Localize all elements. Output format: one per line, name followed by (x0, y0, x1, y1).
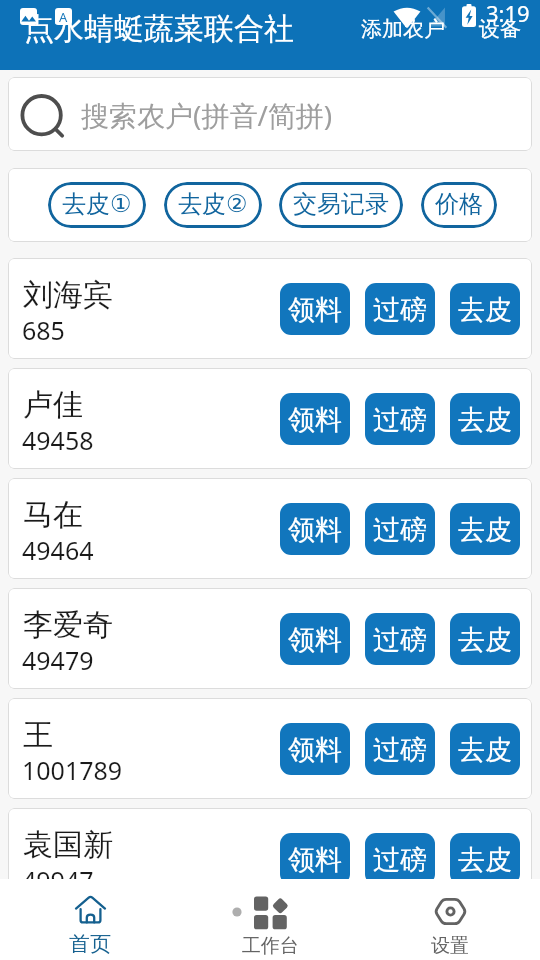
button[interactable]: 去皮 (450, 393, 520, 445)
staticText: 去皮 (458, 623, 512, 657)
staticText: 去皮 (458, 733, 512, 767)
staticText: 领料 (288, 293, 342, 327)
button[interactable]: 卢佳 (8, 368, 532, 469)
button[interactable]: 过磅 (365, 833, 435, 885)
staticText: 49464 (22, 533, 94, 567)
button[interactable]: 去皮② (164, 182, 262, 228)
staticText: 过磅 (373, 293, 427, 327)
staticText: 去皮 (458, 513, 512, 547)
staticText: 3:19 (486, 0, 530, 28)
staticText: 马在 (23, 496, 83, 534)
staticText: 搜索农户(拼音/简拼) (81, 96, 333, 134)
staticText: 添加农户 (361, 16, 445, 42)
staticText: 过磅 (373, 513, 427, 547)
button[interactable]: 领料 (280, 503, 350, 555)
button[interactable]: 李爱奇 (8, 588, 532, 689)
staticText: 去皮① (62, 189, 132, 219)
staticText: 领料 (288, 403, 342, 437)
button[interactable]: 领料 (280, 283, 350, 335)
staticText: 过磅 (373, 623, 427, 657)
button[interactable]: 去皮① (48, 182, 146, 228)
staticText: 过磅 (373, 843, 427, 877)
button[interactable]: 过磅 (365, 723, 435, 775)
button[interactable]: 领料 (280, 613, 350, 665)
staticText: 去皮② (178, 189, 248, 219)
button[interactable]: 过磅 (365, 283, 435, 335)
button[interactable]: 添加农户 (353, 6, 453, 52)
button[interactable]: 搜索农户(拼音/简拼) (8, 77, 532, 151)
button[interactable]: 交易记录 (279, 182, 403, 228)
button[interactable]: 马在 (8, 478, 532, 579)
button[interactable]: 去皮 (450, 833, 520, 885)
staticText: 49947 (22, 863, 94, 897)
button[interactable]: 工作台 (180, 879, 360, 960)
button[interactable]: 过磅 (365, 613, 435, 665)
staticText: 王 (23, 716, 53, 754)
staticText: 设置 (431, 934, 469, 958)
button[interactable]: 王 (8, 698, 532, 799)
staticText: 过磅 (373, 733, 427, 767)
staticText: 设备 (479, 16, 521, 42)
button[interactable]: 过磅 (365, 393, 435, 445)
staticText: 李爱奇 (23, 606, 113, 644)
staticText: 交易记录 (293, 189, 389, 219)
staticText: 49479 (22, 643, 94, 677)
button[interactable]: 去皮 (450, 503, 520, 555)
staticText: 去皮 (458, 293, 512, 327)
staticText: 卢佳 (23, 386, 83, 424)
staticText: 去皮 (458, 843, 512, 877)
staticText: 首页 (69, 931, 111, 957)
button[interactable]: 去皮 (450, 613, 520, 665)
button[interactable]: 过磅 (365, 503, 435, 555)
button[interactable]: 去皮 (450, 283, 520, 335)
staticText: 点水蜻蜓蔬菜联合社 (24, 10, 294, 48)
staticText: 工作台 (242, 934, 299, 958)
staticText: 49458 (22, 423, 94, 457)
staticText: 过磅 (373, 403, 427, 437)
button[interactable]: 设置 (360, 879, 540, 960)
button[interactable]: 袁国新 (8, 808, 532, 909)
button[interactable]: 去皮 (450, 723, 520, 775)
staticText: 领料 (288, 513, 342, 547)
staticText: 685 (22, 313, 65, 347)
staticText: 袁国新 (23, 826, 113, 864)
staticText: 领料 (288, 843, 342, 877)
staticText: A (59, 8, 68, 25)
staticText: 领料 (288, 623, 342, 657)
button[interactable]: 价格 (421, 182, 497, 228)
staticText: 去皮 (458, 403, 512, 437)
button[interactable]: 刘海宾 (8, 258, 532, 359)
button[interactable]: 领料 (280, 393, 350, 445)
staticText: 刘海宾 (23, 276, 113, 314)
button[interactable]: 设备 (471, 6, 529, 52)
staticText: 1001789 (22, 753, 123, 787)
button[interactable]: 领料 (280, 833, 350, 885)
staticText: 价格 (435, 189, 483, 219)
button[interactable]: 领料 (280, 723, 350, 775)
button[interactable]: 首页 (0, 879, 180, 960)
staticText: 领料 (288, 733, 342, 767)
